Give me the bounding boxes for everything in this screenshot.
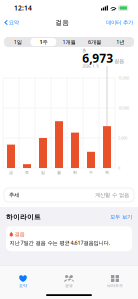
button[interactable]: 공유 [46, 270, 92, 292]
button[interactable]: 요약 [0, 17, 19, 28]
staticText: 요약 [9, 19, 19, 26]
button[interactable]: 1주 [31, 38, 56, 46]
staticText: 지난 7일간 걸음 수는 평균 4,617걸음입니다. [10, 239, 110, 246]
button[interactable]: 1년 [107, 38, 133, 46]
staticText: 5,000 [118, 135, 127, 141]
staticText: 6,973 [82, 50, 113, 66]
staticText: 브라우즈 [107, 283, 123, 288]
staticText: 요약 [19, 283, 27, 288]
staticText: 2026. 1. 9. [82, 63, 99, 69]
staticText: 월 [57, 170, 61, 175]
staticText: 추세 [9, 192, 19, 198]
button[interactable]: 요약 [0, 270, 46, 292]
staticText: 0 [118, 165, 120, 171]
staticText: 10,000 [118, 105, 129, 111]
staticText: 6개월 [88, 38, 101, 46]
staticText: 모두 보기 [110, 214, 132, 220]
staticText: 공유 [65, 283, 73, 288]
staticText: 1년 [116, 38, 124, 46]
staticText: 토 [25, 170, 29, 175]
staticText: 1개월 [62, 38, 75, 46]
button[interactable]: 걸음 [6, 226, 132, 251]
button[interactable]: 브라우즈 [92, 270, 138, 292]
staticText: 1주 [39, 38, 47, 46]
staticText: 총 [82, 48, 86, 53]
button[interactable]: 1개월 [56, 38, 82, 46]
button[interactable]: 6개월 [82, 38, 107, 46]
staticText: 일 [41, 170, 45, 175]
staticText: 수 [89, 170, 93, 175]
staticText: 15,000 [118, 75, 129, 81]
staticText: 걸음 [114, 58, 124, 64]
staticText: 걸음 [14, 231, 24, 237]
button[interactable]: 모두 보기 [110, 214, 132, 220]
staticText: 화 [73, 170, 77, 175]
staticText: 12:14 [14, 4, 32, 12]
button[interactable]: 1일 [5, 38, 31, 46]
staticText: 금 [9, 170, 13, 175]
button[interactable]: 데이터 추가 [106, 17, 138, 28]
staticText: 1일 [14, 38, 22, 46]
staticText: 데이터 추가 [106, 19, 133, 26]
staticText: 목 [105, 170, 109, 175]
staticText: 걸음 [55, 18, 69, 27]
staticText: 하이라이트 [6, 213, 41, 221]
button[interactable]: 추세 [4, 188, 134, 202]
staticText: 계산할 수 없음 [95, 192, 129, 198]
